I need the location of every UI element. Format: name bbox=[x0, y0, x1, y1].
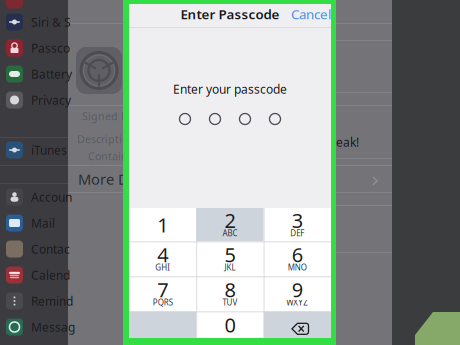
button[interactable]: Battery bbox=[0, 61, 68, 87]
button[interactable]: Privacy bbox=[0, 87, 68, 113]
staticText: 1 bbox=[157, 211, 168, 238]
staticText: 7 bbox=[157, 276, 168, 303]
staticText: Calend bbox=[31, 267, 70, 283]
staticText: 8 bbox=[224, 276, 235, 303]
staticText: iTunes bbox=[31, 142, 67, 158]
staticText: TUV bbox=[222, 297, 237, 308]
button[interactable]: Mail bbox=[0, 210, 68, 236]
staticText: Enter your passcode bbox=[173, 81, 287, 97]
button[interactable]: 6 bbox=[264, 241, 331, 276]
button[interactable]: Remind bbox=[0, 288, 68, 314]
button[interactable]: 5 bbox=[196, 241, 264, 276]
button[interactable]: 2 bbox=[196, 208, 264, 241]
button[interactable]: 1 bbox=[129, 208, 196, 241]
staticText: Mail bbox=[31, 215, 55, 231]
staticText: WXYZ bbox=[286, 297, 308, 308]
staticText: Contac bbox=[31, 241, 70, 257]
staticText: Battery bbox=[31, 66, 72, 82]
staticText: 5 bbox=[224, 241, 235, 268]
staticText: More Det bbox=[78, 169, 142, 189]
staticText: 3 bbox=[292, 207, 303, 234]
staticText: eak! bbox=[336, 134, 359, 150]
staticText: 0 bbox=[224, 311, 235, 338]
button[interactable]: Passco bbox=[0, 35, 68, 61]
staticText: GHI bbox=[155, 262, 170, 273]
staticText: Signed b bbox=[82, 109, 128, 123]
button[interactable]: 4 bbox=[129, 241, 196, 276]
button[interactable] bbox=[0, 0, 68, 13]
staticText: Descriptio bbox=[77, 132, 128, 146]
staticText: ABC bbox=[222, 228, 237, 238]
button[interactable]: 3 bbox=[264, 208, 331, 241]
staticText: Accoun bbox=[31, 189, 72, 205]
staticText: Privacy bbox=[31, 92, 71, 108]
button[interactable]: 7 bbox=[129, 276, 196, 311]
staticText: Contain bbox=[88, 149, 128, 163]
button[interactable]: 0 bbox=[196, 311, 264, 338]
staticText: DEF bbox=[290, 228, 304, 238]
staticText: JKL bbox=[224, 262, 235, 273]
button[interactable]: Siri & S bbox=[0, 9, 68, 35]
staticText: Siri & S bbox=[31, 14, 71, 30]
staticText: MNO bbox=[288, 262, 307, 273]
button[interactable]: Accoun bbox=[0, 184, 68, 210]
staticText: 9 bbox=[292, 276, 303, 303]
staticText: 6 bbox=[292, 241, 303, 268]
button[interactable]: Delete bbox=[264, 311, 331, 338]
button[interactable]: 8 bbox=[196, 276, 264, 311]
staticText: Messag bbox=[31, 319, 75, 335]
staticText: Remind bbox=[31, 293, 73, 309]
button[interactable]: iTunes bbox=[0, 137, 68, 163]
button[interactable]: 9 bbox=[264, 276, 331, 311]
button[interactable]: Contac bbox=[0, 236, 68, 262]
button[interactable]: Messag bbox=[0, 314, 68, 340]
staticText: Cancel bbox=[291, 5, 331, 23]
button[interactable]: Cancel bbox=[291, 5, 331, 23]
staticText: 2 bbox=[224, 207, 235, 234]
staticText: PQRS bbox=[153, 297, 173, 308]
staticText: Passco bbox=[31, 40, 70, 56]
staticText: 4 bbox=[157, 241, 168, 268]
button[interactable]: Calend bbox=[0, 262, 68, 288]
staticText: Enter Passcode bbox=[180, 5, 279, 23]
